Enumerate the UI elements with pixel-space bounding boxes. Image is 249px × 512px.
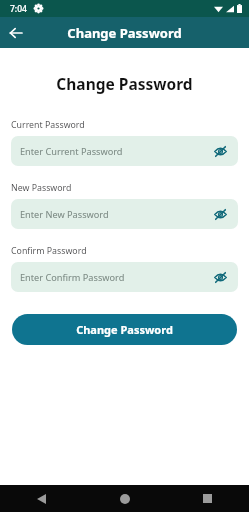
staticText: New Password [11,182,72,194]
staticText: Change Password [76,322,173,337]
button[interactable]: Enter Current Password [11,136,238,166]
button[interactable]: Enter New Password [11,199,238,229]
staticText: Confirm Password [11,245,87,257]
button[interactable]: Home [83,485,166,512]
staticText: Current Password [11,119,85,131]
staticText: Change Password [0,73,249,94]
button[interactable]: Recent apps [166,485,249,512]
button[interactable]: Show New Password [211,205,229,223]
staticText: Change Password [67,24,182,42]
button[interactable]: Enter Confirm Password [11,262,238,292]
staticText: Enter Current Password [20,145,211,158]
staticText: Enter Confirm Password [20,271,211,284]
button[interactable]: Change Password [12,314,237,345]
staticText: 7:04 [10,3,27,15]
button[interactable]: Back [3,20,29,46]
staticText: Enter New Password [20,208,211,221]
button[interactable]: Back [0,485,83,512]
button[interactable]: Show Confirm Password [211,268,229,286]
button[interactable]: Show Current Password [211,142,229,160]
